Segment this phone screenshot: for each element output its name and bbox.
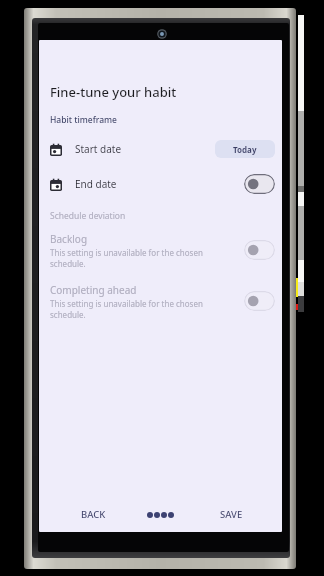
button[interactable]: Toggle bbox=[244, 291, 275, 311]
staticText: BACK bbox=[81, 508, 106, 521]
staticText: This setting is unavailable for the chos… bbox=[50, 298, 215, 320]
staticText: End date bbox=[75, 177, 117, 191]
button[interactable]: Backlog bbox=[39, 232, 282, 269]
staticText: This setting is unavailable for the chos… bbox=[50, 247, 215, 269]
button[interactable]: Completing ahead bbox=[39, 283, 282, 320]
staticText: SAVE bbox=[220, 508, 243, 521]
button[interactable]: End date bbox=[39, 169, 282, 199]
staticText: Habit timeframe bbox=[50, 114, 117, 126]
button[interactable]: BACK bbox=[65, 495, 121, 532]
staticText: Completing ahead bbox=[50, 283, 137, 297]
staticText: Today bbox=[233, 144, 257, 155]
staticText: Start date bbox=[75, 142, 122, 156]
button[interactable]: Start date bbox=[39, 134, 282, 164]
button[interactable]: Today bbox=[215, 140, 275, 158]
button[interactable]: Toggle bbox=[244, 174, 275, 194]
staticText: Fine-tune your habit bbox=[50, 83, 177, 101]
button[interactable]: Toggle bbox=[244, 240, 275, 260]
staticText: Backlog bbox=[50, 232, 88, 246]
staticText: Schedule deviation bbox=[50, 210, 126, 222]
button[interactable]: SAVE bbox=[203, 495, 259, 532]
